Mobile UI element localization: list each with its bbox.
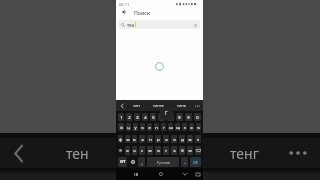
button[interactable]: Shift xyxy=(118,146,123,155)
button[interactable]: а xyxy=(139,135,145,143)
button[interactable]: б xyxy=(179,146,185,155)
staticText: тен xyxy=(66,144,89,163)
staticText: тен xyxy=(127,22,135,28)
button[interactable]: Previous suggestions xyxy=(118,101,125,111)
button[interactable]: х xyxy=(189,123,194,131)
staticText: ш xyxy=(169,125,173,130)
button[interactable]: 4 xyxy=(142,113,148,121)
staticText: ю xyxy=(188,148,192,153)
button[interactable]: SFT xyxy=(118,157,127,167)
staticText: тен xyxy=(133,103,140,109)
staticText: ч xyxy=(133,148,136,153)
staticText: тенг xyxy=(230,144,259,163)
button[interactable]: е xyxy=(147,123,152,131)
staticText: и xyxy=(157,148,160,153)
button[interactable]: ч xyxy=(132,146,137,155)
button[interactable]: тенге xyxy=(147,100,170,111)
button[interactable]: 9 xyxy=(185,113,192,121)
button[interactable]: . xyxy=(181,157,188,167)
staticText: OK xyxy=(193,160,198,165)
button[interactable]: с xyxy=(139,146,145,155)
button[interactable]: 7 xyxy=(167,113,174,121)
button[interactable]: 3 xyxy=(134,113,140,121)
button[interactable]: ж xyxy=(187,135,193,143)
button[interactable]: 5 xyxy=(150,113,156,121)
button[interactable]: тен xyxy=(119,20,200,29)
staticText: Г xyxy=(165,110,168,116)
button[interactable]: ь xyxy=(171,146,177,155)
staticText: м xyxy=(148,148,152,153)
button[interactable]: ф xyxy=(118,135,123,143)
button[interactable]: э xyxy=(195,135,201,143)
button[interactable]: в xyxy=(132,135,137,143)
staticText: SFT xyxy=(120,160,126,164)
staticText: о xyxy=(165,137,168,142)
staticText: е xyxy=(148,125,151,130)
button[interactable]: н xyxy=(154,123,159,131)
button[interactable]: т xyxy=(163,146,169,155)
button[interactable]: ю xyxy=(187,146,193,155)
staticText: з xyxy=(184,125,186,130)
staticText: 0 xyxy=(196,115,199,120)
staticText: 5 xyxy=(152,115,155,120)
button[interactable]: Back xyxy=(179,168,190,180)
button[interactable]: м xyxy=(147,146,153,155)
button[interactable]: 8 xyxy=(176,113,183,121)
staticText: й xyxy=(120,125,123,130)
button[interactable]: Clear search xyxy=(193,23,197,27)
staticText: п xyxy=(149,137,152,142)
button[interactable]: д xyxy=(179,135,185,143)
button[interactable]: л xyxy=(171,135,177,143)
button[interactable]: я xyxy=(125,146,130,155)
button[interactable]: п xyxy=(147,135,153,143)
button[interactable]: 1 xyxy=(118,113,124,121)
button[interactable]: Recent apps xyxy=(192,168,203,180)
button[interactable]: More options xyxy=(193,101,201,111)
button[interactable]: , xyxy=(138,157,145,167)
staticText: т xyxy=(165,148,167,153)
staticText: ы xyxy=(126,137,130,142)
staticText: д xyxy=(181,137,184,142)
staticText: с xyxy=(141,148,143,153)
button[interactable]: р xyxy=(155,135,161,143)
staticText: у xyxy=(134,125,137,130)
button[interactable]: о xyxy=(163,135,169,143)
staticText: г xyxy=(163,125,165,130)
staticText: 2 xyxy=(128,115,131,120)
button[interactable]: Back xyxy=(120,8,128,16)
button[interactable]: тен xyxy=(125,100,147,111)
button[interactable]: OK xyxy=(190,157,201,167)
button[interactable]: Русский xyxy=(147,157,179,167)
button[interactable]: ъ xyxy=(196,123,201,131)
button[interactable]: й xyxy=(118,123,124,131)
button[interactable]: г xyxy=(161,123,166,131)
staticText: ф xyxy=(119,137,122,142)
button[interactable]: ц xyxy=(126,123,131,131)
staticText: 9 xyxy=(187,115,190,120)
button[interactable]: Home xyxy=(155,168,166,180)
staticText: б xyxy=(181,148,184,153)
button[interactable]: и xyxy=(155,146,161,155)
button[interactable]: 0 xyxy=(194,113,201,121)
button[interactable]: Backspace xyxy=(195,146,201,155)
staticText: тень xyxy=(177,103,187,109)
staticText: 1 xyxy=(120,115,123,120)
staticText: в xyxy=(133,137,136,142)
button[interactable]: ы xyxy=(125,135,130,143)
staticText: ъ xyxy=(197,125,200,130)
button[interactable]: 6 xyxy=(158,113,165,121)
button[interactable]: Hide keyboard xyxy=(130,168,141,180)
button[interactable]: щ xyxy=(175,123,180,131)
button[interactable]: тень xyxy=(170,100,193,111)
button[interactable]: Change language xyxy=(129,157,136,167)
button[interactable]: у xyxy=(133,123,138,131)
button[interactable]: 2 xyxy=(126,113,132,121)
staticText: 4 xyxy=(144,115,147,120)
staticText: л xyxy=(173,137,176,142)
staticText: я xyxy=(126,148,129,153)
button[interactable]: к xyxy=(140,123,145,131)
button[interactable]: з xyxy=(182,123,187,131)
staticText: 3 xyxy=(136,115,139,120)
button[interactable]: ш xyxy=(168,123,173,131)
